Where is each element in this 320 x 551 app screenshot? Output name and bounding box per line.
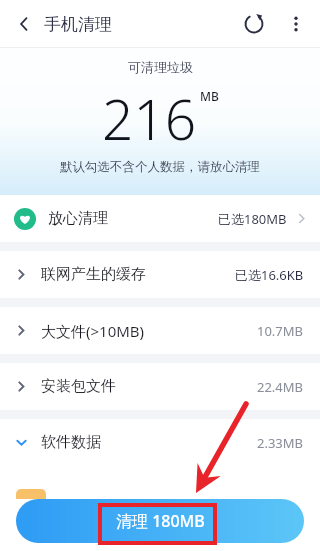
staticText: 联网产生的缓存	[41, 265, 146, 284]
staticText: 22.4MB	[257, 378, 304, 396]
staticText: 大文件(>10MB)	[41, 321, 145, 341]
staticText: 默认勾选不含个人数据，请放心清理	[60, 159, 260, 175]
button[interactable]: 清理 180MB	[16, 499, 304, 543]
button[interactable]: 大文件(>10MB)	[0, 307, 320, 354]
staticText: 10.7MB	[257, 322, 304, 340]
staticText: 已选16.6KB	[235, 266, 304, 284]
staticText: 216	[102, 81, 197, 156]
staticText: 安装包文件	[41, 377, 116, 396]
button[interactable]: 软件数据	[0, 419, 320, 466]
button[interactable]: 返回	[4, 4, 44, 44]
button[interactable]: 刷新	[232, 2, 276, 46]
staticText: 已选180MB	[218, 210, 287, 228]
button[interactable]: 联网产生的缓存	[0, 251, 320, 298]
staticText: 2.33MB	[257, 434, 304, 452]
staticText: 可清理垃圾	[128, 59, 193, 75]
button[interactable]: 安装包文件	[0, 363, 320, 410]
staticText: 软件数据	[41, 433, 101, 452]
button[interactable]: 放心清理	[0, 195, 320, 242]
staticText: MB	[200, 88, 219, 104]
button[interactable]: 更多选项	[276, 4, 316, 44]
staticText: 放心清理	[48, 209, 108, 228]
staticText: 清理 180MB	[116, 510, 205, 532]
staticText: 手机清理	[44, 14, 112, 35]
